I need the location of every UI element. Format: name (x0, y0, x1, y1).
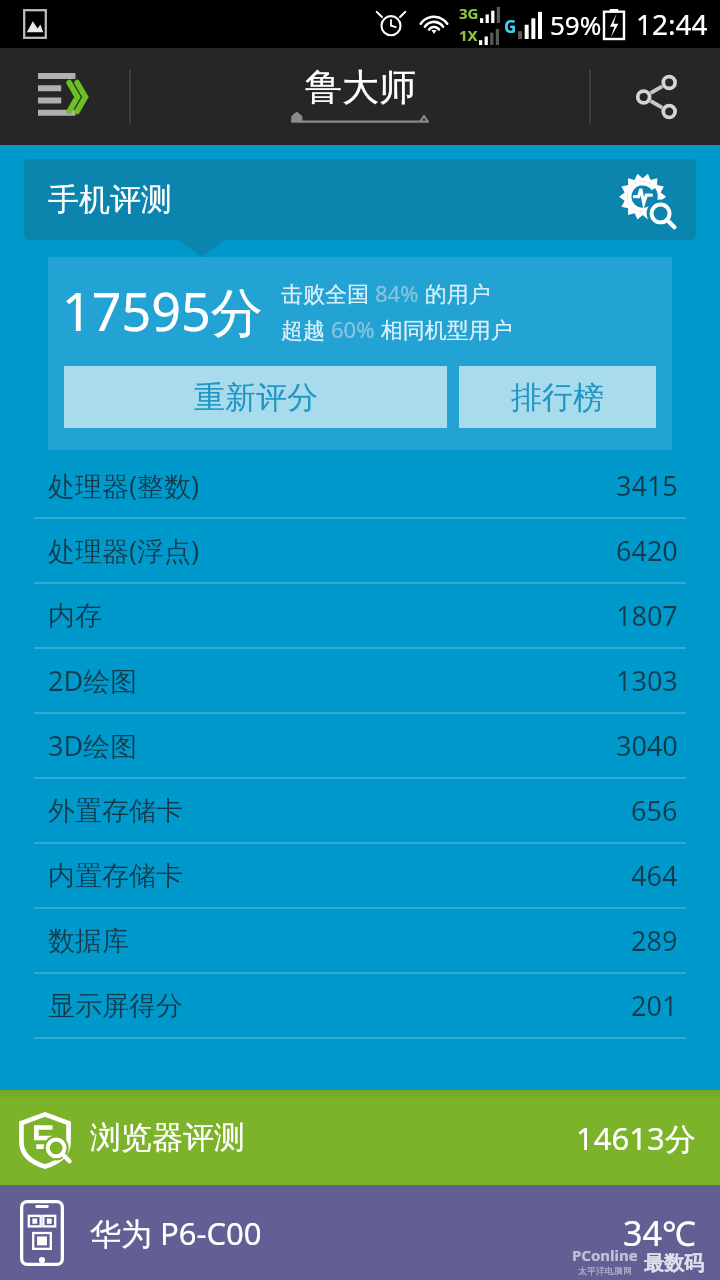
staticText: 3G (459, 3, 479, 23)
button[interactable]: 内存 (0, 584, 720, 647)
staticText: 数据库 (48, 924, 129, 958)
button[interactable]: Menu (0, 48, 128, 145)
staticText: G (504, 15, 517, 38)
staticText: 处理器(浮点) (48, 532, 200, 569)
staticText: 14613分 (576, 1117, 696, 1159)
staticText: 太平洋电脑网 (578, 1265, 632, 1276)
staticText: 内存 (48, 599, 102, 633)
staticText: 华为 P6-C00 (90, 1212, 262, 1254)
button[interactable]: 华为 P6-C00 (0, 1185, 720, 1280)
button[interactable]: 手机评测 (24, 159, 696, 240)
button[interactable]: 浏览器评测 (0, 1090, 720, 1185)
button[interactable]: 处理器(整数) (0, 454, 720, 517)
staticText: 排行榜 (511, 378, 604, 417)
staticText: 3D绘图 (48, 727, 138, 764)
staticText: 656 (631, 792, 678, 829)
staticText: 1303 (616, 662, 678, 699)
staticText: 2D绘图 (48, 662, 138, 699)
button[interactable]: 外置存储卡 (0, 779, 720, 842)
staticText: 289 (631, 922, 678, 959)
staticText: 3415 (616, 467, 678, 504)
button[interactable]: Share (592, 48, 720, 145)
button[interactable]: 排行榜 (459, 366, 656, 428)
staticText: 重新评分 (194, 378, 318, 417)
button[interactable]: 2D绘图 (0, 649, 720, 712)
staticText: 击败全国 (281, 278, 375, 308)
staticText: 17595分 (62, 275, 263, 346)
staticText: 处理器(整数) (48, 467, 200, 504)
staticText: 鲁大师 (305, 64, 416, 111)
staticText: 201 (631, 987, 678, 1024)
staticText: 手机评测 (48, 180, 172, 219)
button[interactable]: 内置存储卡 (0, 844, 720, 907)
staticText: 的用户 (419, 278, 491, 308)
button[interactable]: 处理器(浮点) (0, 519, 720, 582)
staticText: 84% (375, 278, 419, 308)
staticText: 34℃ (623, 1210, 696, 1256)
staticText: 1X (459, 25, 478, 45)
staticText: PConline (572, 1245, 638, 1265)
button[interactable]: 显示屏得分 (0, 974, 720, 1037)
staticText: 464 (631, 857, 678, 894)
staticText: 3040 (616, 727, 678, 764)
staticText: 1807 (616, 597, 678, 634)
button[interactable]: 重新评分 (64, 366, 447, 428)
staticText: 60% (331, 314, 375, 344)
staticText: 超越 (281, 314, 331, 344)
staticText: 相同机型用户 (375, 314, 513, 344)
button[interactable]: 3D绘图 (0, 714, 720, 777)
staticText: 浏览器评测 (90, 1118, 245, 1157)
staticText: 显示屏得分 (48, 989, 183, 1023)
staticText: 6420 (616, 532, 678, 569)
staticText: 59% (550, 7, 602, 42)
button[interactable]: 数据库 (0, 909, 720, 972)
staticText: 最数码 (644, 1251, 704, 1276)
staticText: 12:44 (636, 5, 708, 43)
staticText: 内置存储卡 (48, 859, 183, 893)
staticText: 外置存储卡 (48, 794, 183, 828)
